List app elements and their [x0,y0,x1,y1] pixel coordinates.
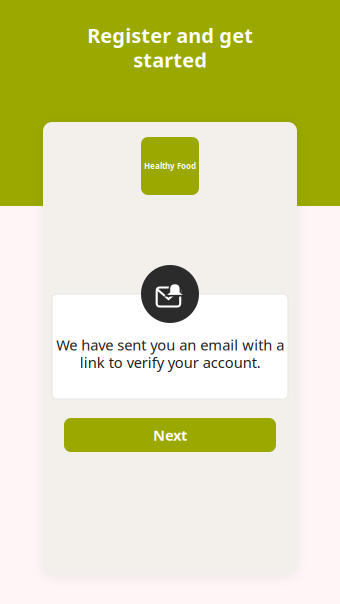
button[interactable]: Next [64,418,276,452]
staticText: Healthy Food [144,161,196,171]
staticText: Next [153,425,187,445]
staticText: Register and get started [87,22,253,73]
staticText: We have sent you an email with a link to… [56,335,284,372]
